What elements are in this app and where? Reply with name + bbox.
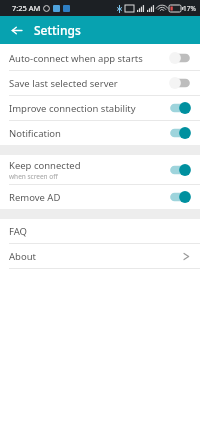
button[interactable]: Toggle off xyxy=(168,51,192,65)
button[interactable]: Keep connected xyxy=(0,155,200,184)
button[interactable]: Notification xyxy=(0,121,200,145)
button[interactable]: Toggle on xyxy=(168,190,192,204)
button[interactable]: Back xyxy=(7,21,25,39)
button[interactable]: Toggle on xyxy=(168,126,192,140)
button[interactable]: About xyxy=(0,244,200,268)
staticText: Keep connected xyxy=(9,159,81,172)
staticText: 7:25 AM xyxy=(12,3,41,13)
staticText: Settings xyxy=(34,22,81,38)
staticText: when screen off xyxy=(9,172,58,181)
staticText: FAQ xyxy=(9,225,190,238)
staticText: Notification xyxy=(9,127,61,140)
staticText: Save last selected server xyxy=(9,77,118,90)
staticText: Improve connection stability xyxy=(9,102,136,115)
staticText: Auto-connect when app starts xyxy=(9,52,143,65)
button[interactable]: Auto-connect when app starts xyxy=(0,46,200,70)
button[interactable]: Toggle off xyxy=(168,76,192,90)
button[interactable]: Remove AD xyxy=(0,185,200,209)
button[interactable]: Improve connection stability xyxy=(0,96,200,120)
staticText: About xyxy=(9,250,183,263)
button[interactable]: Toggle on xyxy=(168,101,192,115)
button[interactable]: FAQ xyxy=(0,219,200,243)
button[interactable]: Toggle on xyxy=(168,163,192,177)
staticText: Remove AD xyxy=(9,191,61,204)
button[interactable]: Save last selected server xyxy=(0,71,200,95)
staticText: 17% xyxy=(183,4,196,13)
